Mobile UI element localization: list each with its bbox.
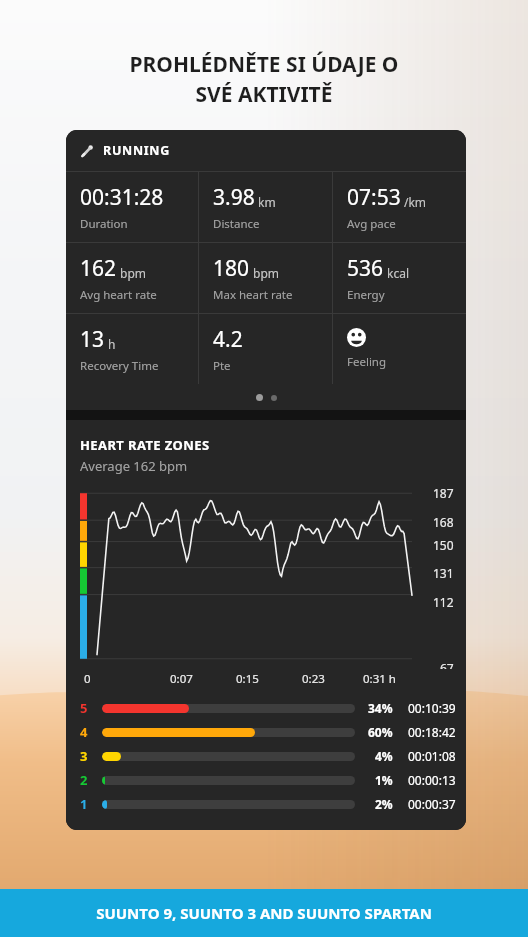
staticText: 2% bbox=[375, 796, 393, 812]
staticText: 4% bbox=[375, 748, 393, 764]
button[interactable]: 536 bbox=[333, 243, 466, 313]
staticText: HEART RATE ZONES bbox=[80, 436, 210, 454]
staticText: Recovery Time bbox=[80, 358, 159, 374]
button[interactable]: 162 bbox=[66, 243, 198, 313]
staticText: Avg pace bbox=[347, 216, 396, 232]
staticText: Distance bbox=[213, 216, 260, 232]
staticText: 00:18:42 bbox=[408, 724, 456, 740]
staticText: PROHLÉDNĚTE SI ÚDAJE O SVÉ AKTIVITĚ bbox=[18, 50, 510, 108]
staticText: 3.98 bbox=[213, 183, 255, 212]
staticText: 67 bbox=[440, 660, 454, 669]
staticText: 00:01:08 bbox=[408, 748, 456, 764]
staticText: 34% bbox=[368, 700, 393, 716]
staticText: Avg heart rate bbox=[80, 287, 157, 303]
button[interactable]: 00:31:28 bbox=[66, 172, 198, 242]
staticText: 131 bbox=[433, 565, 454, 581]
staticText: /km bbox=[404, 194, 427, 210]
button[interactable]: 4.2 bbox=[199, 314, 332, 384]
staticText: 0:31 h bbox=[363, 671, 396, 687]
staticText: 536 bbox=[347, 254, 384, 283]
staticText: kcal bbox=[387, 265, 409, 281]
staticText: 60% bbox=[368, 724, 393, 740]
staticText: Pte bbox=[213, 358, 231, 374]
staticText: bpm bbox=[120, 265, 146, 281]
staticText: SUUNTO 9, SUUNTO 3 AND SUUNTO SPARTAN bbox=[96, 903, 432, 923]
button[interactable]: 07:53 bbox=[333, 172, 466, 242]
staticText: 00:00:13 bbox=[408, 772, 456, 788]
staticText: 13 bbox=[80, 325, 105, 354]
staticText: 00:31:28 bbox=[80, 183, 164, 212]
staticText: 2 bbox=[80, 771, 88, 789]
staticText: 00:00:37 bbox=[408, 796, 456, 812]
staticText: 0 bbox=[84, 671, 91, 687]
staticText: 07:53 bbox=[347, 183, 401, 212]
button[interactable]: 3 bbox=[80, 744, 456, 768]
button[interactable]: 4 bbox=[80, 720, 456, 744]
staticText: Duration bbox=[80, 216, 128, 232]
staticText: 180 bbox=[213, 254, 250, 283]
staticText: 162 bbox=[80, 254, 117, 283]
button[interactable]: 180 bbox=[199, 243, 332, 313]
button[interactable]: Running bbox=[66, 130, 466, 171]
staticText: 0:15 bbox=[236, 671, 259, 687]
staticText: 5 bbox=[80, 699, 88, 717]
button[interactable]: 3.98 bbox=[199, 172, 332, 242]
other: Feeling bbox=[347, 328, 366, 347]
staticText: 0:07 bbox=[170, 671, 193, 687]
staticText: Average 162 bpm bbox=[80, 457, 188, 475]
button[interactable]: 5 bbox=[80, 696, 456, 720]
staticText: Max heart rate bbox=[213, 287, 293, 303]
other: Running bbox=[80, 144, 94, 158]
staticText: h bbox=[108, 336, 116, 352]
button[interactable]: 1 bbox=[80, 792, 456, 816]
button[interactable]: SUUNTO 9, SUUNTO 3 AND SUUNTO SPARTAN bbox=[0, 889, 528, 937]
staticText: 4 bbox=[80, 723, 88, 741]
staticText: km bbox=[258, 194, 276, 210]
staticText: 4.2 bbox=[213, 325, 243, 354]
staticText: bpm bbox=[253, 265, 279, 281]
staticText: 187 bbox=[433, 485, 454, 501]
staticText: 0:23 bbox=[302, 671, 325, 687]
staticText: RUNNING bbox=[103, 142, 170, 159]
staticText: Energy bbox=[347, 287, 385, 303]
staticText: 168 bbox=[433, 514, 454, 530]
button[interactable]: 2 bbox=[80, 768, 456, 792]
staticText: 150 bbox=[433, 537, 454, 553]
staticText: 112 bbox=[433, 594, 454, 610]
staticText: 1 bbox=[80, 795, 88, 813]
staticText: 1% bbox=[375, 772, 393, 788]
button[interactable]: Feeling bbox=[333, 314, 466, 384]
staticText: 3 bbox=[80, 747, 88, 765]
staticText: 00:10:39 bbox=[408, 700, 456, 716]
staticText: Feeling bbox=[347, 354, 387, 370]
button[interactable]: 13 bbox=[66, 314, 198, 384]
